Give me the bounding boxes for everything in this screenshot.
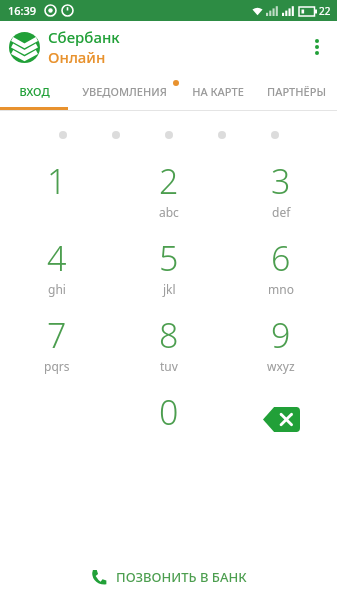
staticText: pqrs [44,358,70,374]
staticText: ВХОД [19,84,50,99]
button[interactable]: 8 [113,312,225,389]
button[interactable]: 4 [0,235,113,312]
button[interactable]: 7 [0,312,113,389]
staticText: ПАРТНЁРЫ [267,84,326,99]
staticText: 4 [47,235,67,281]
button[interactable]: 0 [113,389,225,466]
staticText: tuv [160,358,178,374]
button[interactable]: 5 [113,235,225,312]
staticText: 5 [159,235,179,281]
staticText: 1 [47,158,67,204]
button[interactable]: Backspace [225,389,337,466]
button[interactable]: ПОЗВОНИТЬ В БАНК [0,554,337,600]
button[interactable]: УВЕДОМЛЕНИЯ [68,72,180,110]
button[interactable]: 9 [225,312,337,389]
button[interactable]: More options [297,27,337,67]
staticText: 9 [271,312,291,358]
button[interactable]: 2 [113,158,225,235]
staticText: 7 [47,312,67,358]
staticText: 16:39 [8,3,37,18]
button[interactable]: ВХОД [0,72,68,110]
staticText: УВЕДОМЛЕНИЯ [82,84,167,99]
staticText: 2 [159,158,179,204]
staticText: ПОЗВОНИТЬ В БАНК [116,568,247,586]
staticText: 0 [159,389,179,435]
staticText: jkl [163,281,176,297]
staticText: Сбербанк [48,27,120,47]
staticText: abc [159,204,179,220]
button[interactable]: 3 [225,158,337,235]
staticText: mno [268,281,294,297]
staticText: 6 [271,235,291,281]
button[interactable]: 1 [0,158,113,235]
staticText: def [272,204,291,220]
staticText: 22 [319,4,331,18]
button[interactable]: НА КАРТЕ [180,72,255,110]
staticText: wxyz [267,358,295,374]
button[interactable]: ПАРТНЁРЫ [255,72,337,110]
staticText: 3 [271,158,291,204]
staticText: Онлайн [48,47,106,67]
staticText: НА КАРТЕ [192,84,244,99]
button[interactable]: 6 [225,235,337,312]
staticText: 8 [159,312,179,358]
staticText: ghi [48,281,66,297]
